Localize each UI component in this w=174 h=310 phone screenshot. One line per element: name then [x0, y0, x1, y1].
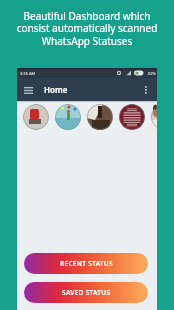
button[interactable]: SAVED STATUS: [24, 282, 148, 303]
button[interactable]: [119, 104, 145, 130]
staticText: Beautiful Dashboard which consist automa…: [0, 9, 174, 48]
button[interactable]: [141, 85, 151, 95]
button[interactable]: [21, 83, 35, 97]
button[interactable]: [23, 104, 49, 130]
button[interactable]: [151, 104, 157, 130]
staticText: 3:36 AM: [20, 71, 36, 76]
button[interactable]: RECENT STATUS: [24, 253, 148, 274]
staticText: SAVED STATUS: [62, 288, 111, 297]
staticText: Home: [44, 84, 68, 95]
button[interactable]: [87, 104, 113, 130]
button[interactable]: [55, 104, 81, 130]
staticText: 62%: [148, 71, 156, 76]
staticText: RECENT STATUS: [60, 259, 113, 268]
